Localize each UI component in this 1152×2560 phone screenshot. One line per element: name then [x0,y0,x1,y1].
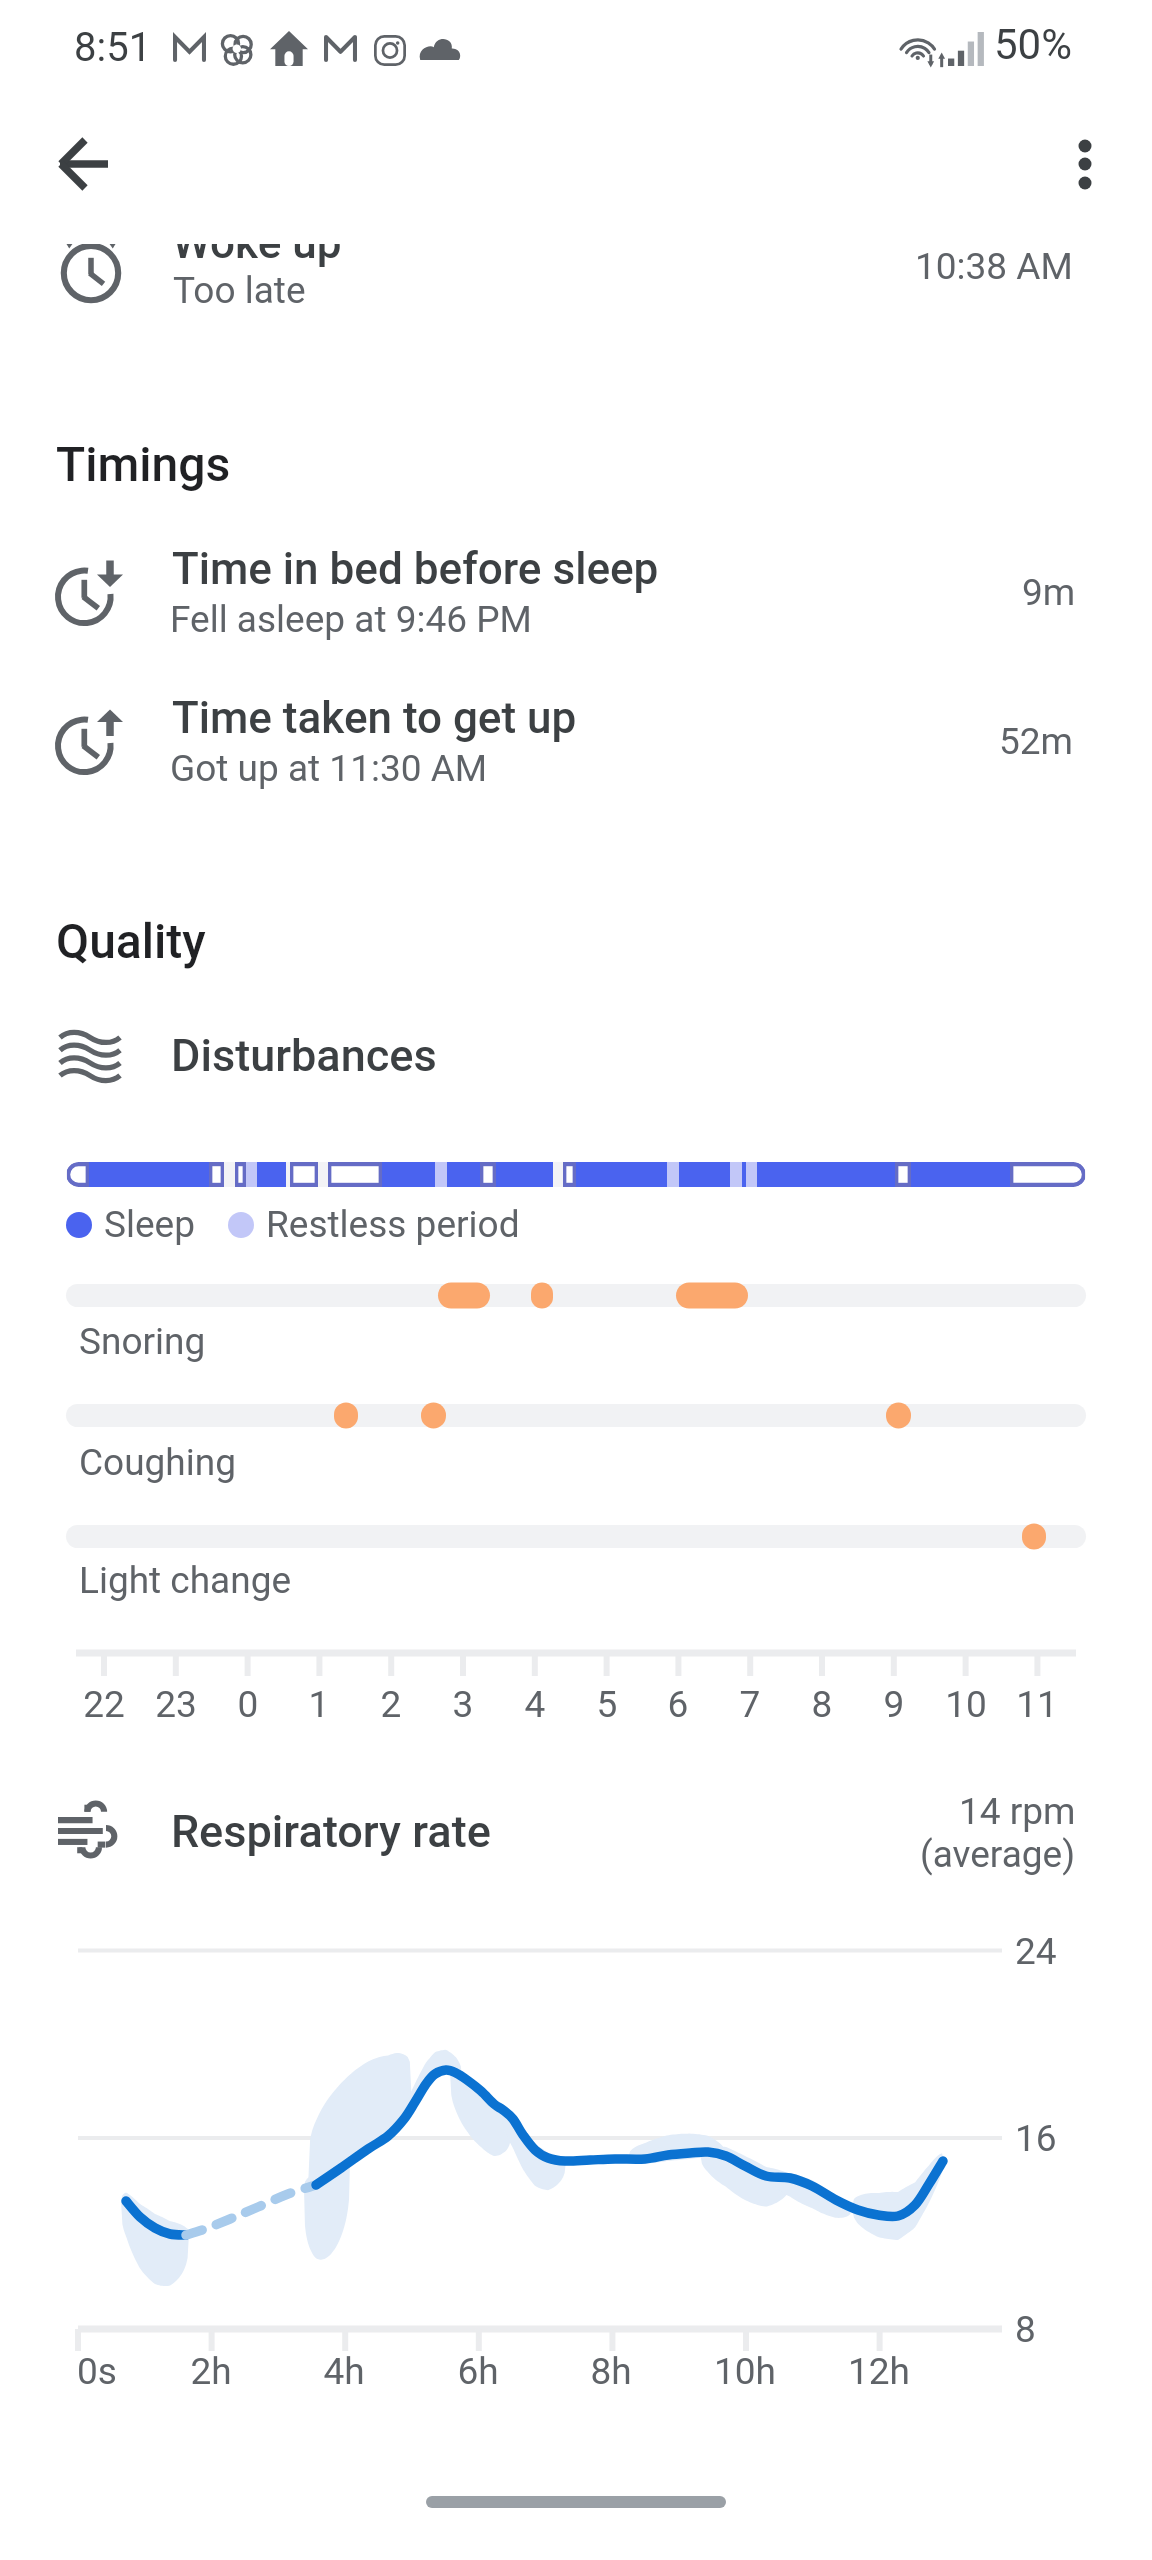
staticText: 2h [151,2350,271,2393]
staticText: 0 [198,1683,298,1726]
staticText: 3 [413,1683,513,1726]
staticText: 50% [994,20,1072,69]
staticText: 16 [1015,2117,1057,2160]
staticText: 4 [485,1683,585,1726]
staticText: 10h [685,2350,805,2393]
staticText: 22 [54,1683,154,1726]
staticText: 4h [284,2350,404,2393]
staticText: 23 [126,1683,226,1726]
staticText: Coughing [79,1441,236,1484]
staticText: 5 [557,1683,657,1726]
staticText: Fell asleep at 9:46 PM [170,598,532,641]
staticText: Time taken to get up [172,692,577,744]
button[interactable] [66,1162,1086,1187]
button[interactable] [0,1396,1152,1440]
staticText: 8h [551,2350,671,2393]
staticText: Restless period [266,1203,520,1246]
staticText: 6h [418,2350,538,2393]
button[interactable] [40,1018,500,1094]
staticText: Got up at 11:30 AM [170,747,488,790]
staticText: Disturbances [171,1029,437,1082]
staticText: 1 [269,1683,369,1726]
button[interactable]: More options [1037,116,1133,212]
staticText: 10 [916,1683,1016,1726]
staticText: 11 [987,1683,1087,1726]
staticText: 9m [1022,571,1076,614]
staticText: Quality [56,913,206,969]
staticText: 2 [341,1683,441,1726]
staticText: 8:51 [74,24,152,71]
staticText: 52m [999,720,1074,763]
staticText: Time in bed before sleep [172,543,659,595]
staticText: 8 [772,1683,872,1726]
button[interactable]: Back [36,116,132,212]
staticText: 9 [844,1683,944,1726]
staticText: 24 [1015,1930,1057,1973]
button[interactable] [0,533,1152,669]
staticText: 0s [37,2350,157,2393]
staticText: Snoring [79,1320,206,1363]
staticText: 10:38 AM [915,245,1073,288]
staticText: Woke up [172,244,342,269]
button[interactable] [0,1517,1152,1561]
button[interactable] [0,1276,1152,1320]
staticText: Too late [173,269,306,312]
button[interactable]: Woke up [0,244,1152,340]
button[interactable] [0,682,1152,818]
staticText: 6 [628,1683,728,1726]
staticText: Timings [56,436,231,492]
staticText: Light change [79,1559,292,1602]
staticText: Sleep [104,1203,195,1246]
staticText: 7 [700,1683,800,1726]
staticText: Respiratory rate [171,1805,491,1858]
staticText: 12h [819,2350,939,2393]
staticText: 8 [1015,2308,1036,2351]
staticText: 14 rpm [959,1790,1076,1833]
staticText: (average) [920,1833,1076,1876]
button[interactable] [40,1795,560,1875]
